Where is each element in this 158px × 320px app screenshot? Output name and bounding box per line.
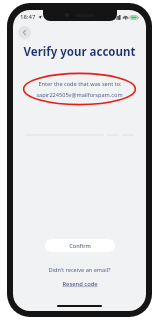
staticText: sapir224505v@mailforspam.com xyxy=(36,91,123,99)
staticText: Didn't receive an email? xyxy=(13,266,146,274)
button[interactable]: Resend code xyxy=(59,279,101,289)
button[interactable]: Confirm xyxy=(45,239,115,252)
button[interactable]: Back xyxy=(18,26,31,39)
staticText: 18:47 xyxy=(20,13,36,21)
staticText: Confirm xyxy=(69,242,91,250)
staticText: Resend code xyxy=(62,280,98,288)
staticText: Enter the code that was sent to: xyxy=(38,80,122,88)
staticText: Verify your account xyxy=(13,44,146,60)
